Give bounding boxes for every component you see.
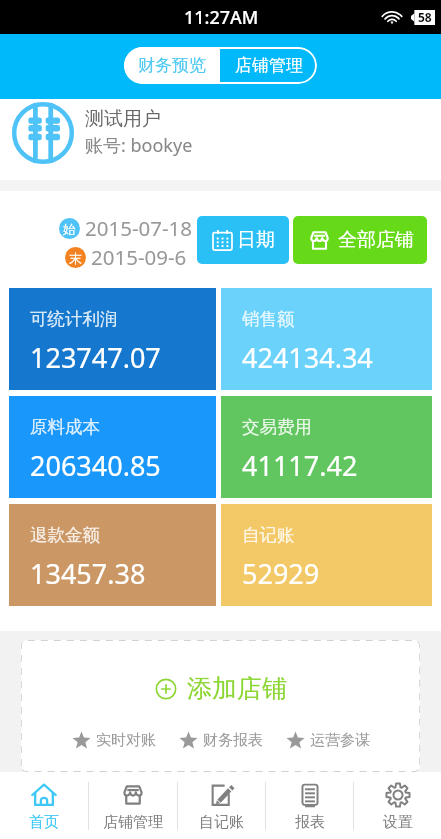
staticText: 财务报表	[203, 731, 263, 750]
staticText: 206340.85	[30, 447, 161, 484]
button[interactable]: 自记账	[178, 772, 265, 839]
button[interactable]: 报表	[266, 772, 353, 839]
staticText: 123747.07	[30, 339, 161, 376]
staticText: 报表	[295, 813, 325, 832]
staticText: 424134.34	[242, 339, 373, 376]
staticText: 交易费用	[242, 416, 312, 438]
staticText: 13457.38	[30, 555, 146, 592]
staticText: 添加店铺	[187, 673, 287, 704]
button[interactable]: 退款金额	[9, 504, 216, 606]
button[interactable]: 原料成本	[9, 396, 216, 498]
staticText: 设置	[383, 813, 413, 832]
staticText: 11:27AM	[184, 5, 259, 30]
button[interactable]: 可统计利润	[9, 288, 216, 390]
button[interactable]: 自记账	[221, 504, 432, 606]
staticText: 可统计利润	[30, 308, 118, 330]
button[interactable]: 首页	[0, 772, 88, 839]
staticText: 始	[63, 221, 76, 237]
staticText: 41117.42	[242, 447, 358, 484]
staticText: 财务预览	[138, 55, 206, 76]
staticText: 2015-07-18	[85, 214, 193, 242]
button[interactable]: 店铺管理	[89, 772, 177, 839]
staticText: 店铺管理	[235, 55, 303, 76]
button[interactable]: 店铺管理	[220, 47, 317, 84]
button[interactable]: 全部店铺	[293, 216, 427, 264]
button[interactable]: 交易费用	[221, 396, 432, 498]
button[interactable]: 日期	[197, 216, 289, 264]
staticText: 首页	[29, 813, 59, 832]
staticText: 测试用户	[85, 107, 161, 131]
button[interactable]: 销售额	[221, 288, 432, 390]
staticText: 52929	[242, 555, 320, 592]
staticText: 运营参谋	[310, 731, 370, 750]
staticText: 原料成本	[30, 416, 100, 438]
button[interactable]: 设置	[354, 772, 441, 839]
staticText: 2015-09-6	[91, 243, 187, 271]
staticText: 日期	[237, 228, 275, 252]
staticText: 58	[418, 9, 432, 25]
staticText: 末	[69, 250, 82, 266]
staticText: 退款金额	[30, 524, 100, 546]
staticText: 销售额	[242, 308, 295, 330]
staticText: 实时对账	[96, 731, 156, 750]
button[interactable]: 添加店铺	[21, 640, 420, 772]
staticText: 店铺管理	[103, 813, 163, 832]
button[interactable]: 测试用户	[0, 99, 441, 180]
staticText: 自记账	[199, 813, 244, 832]
button[interactable]: 财务预览	[124, 47, 220, 84]
staticText: 账号: bookye	[85, 133, 193, 158]
staticText: 全部店铺	[338, 228, 414, 252]
staticText: 自记账	[242, 524, 295, 546]
